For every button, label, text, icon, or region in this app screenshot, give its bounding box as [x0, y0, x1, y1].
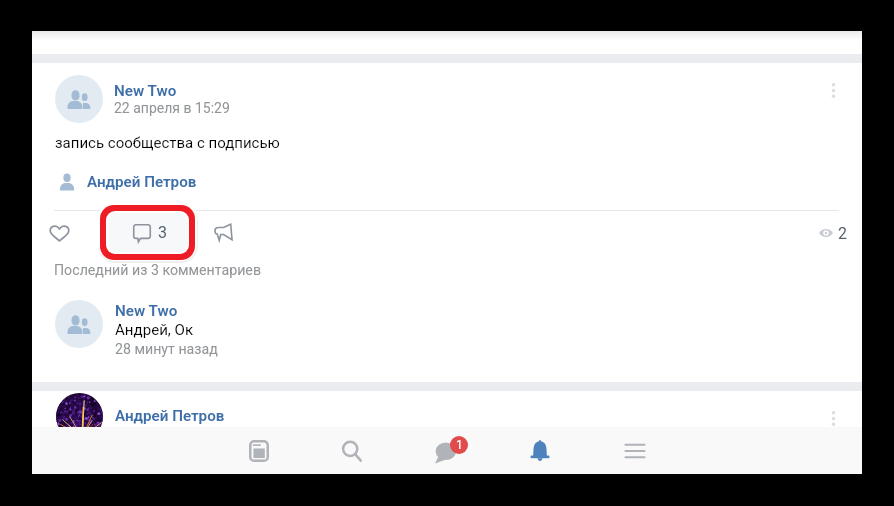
- staticText: Андрей Петров: [115, 407, 225, 425]
- button[interactable]: New Two: [32, 302, 862, 358]
- button[interactable]: Search: [324, 427, 380, 474]
- staticText: 28 минут назад: [115, 341, 218, 358]
- button[interactable]: New Two: [32, 70, 862, 128]
- staticText: Последний из 3 комментариев: [54, 262, 261, 279]
- button[interactable]: More options: [811, 68, 855, 112]
- staticText: 3: [158, 223, 167, 242]
- button[interactable]: Messages: [421, 427, 477, 474]
- button[interactable]: Андрей Петров: [32, 387, 862, 445]
- staticText: New Two: [115, 302, 178, 320]
- button[interactable]: 3: [108, 213, 187, 252]
- staticText: Андрей, Ок: [115, 321, 194, 339]
- button[interactable]: More options: [811, 396, 855, 440]
- staticText: New Two: [114, 82, 177, 100]
- button[interactable]: Notifications: [512, 427, 568, 474]
- button[interactable]: Share: [207, 216, 239, 248]
- staticText: Андрей Петров: [87, 173, 197, 191]
- button[interactable]: Like: [43, 217, 75, 249]
- button[interactable]: Андрей Петров: [55, 171, 197, 193]
- staticText: 2: [838, 224, 847, 243]
- button[interactable]: News feed: [231, 427, 287, 474]
- staticText: запись сообщества с подписью: [55, 134, 280, 152]
- button[interactable]: Menu: [607, 427, 663, 474]
- staticText: 1: [456, 438, 463, 452]
- staticText: 22 апреля в 15:29: [114, 100, 230, 116]
